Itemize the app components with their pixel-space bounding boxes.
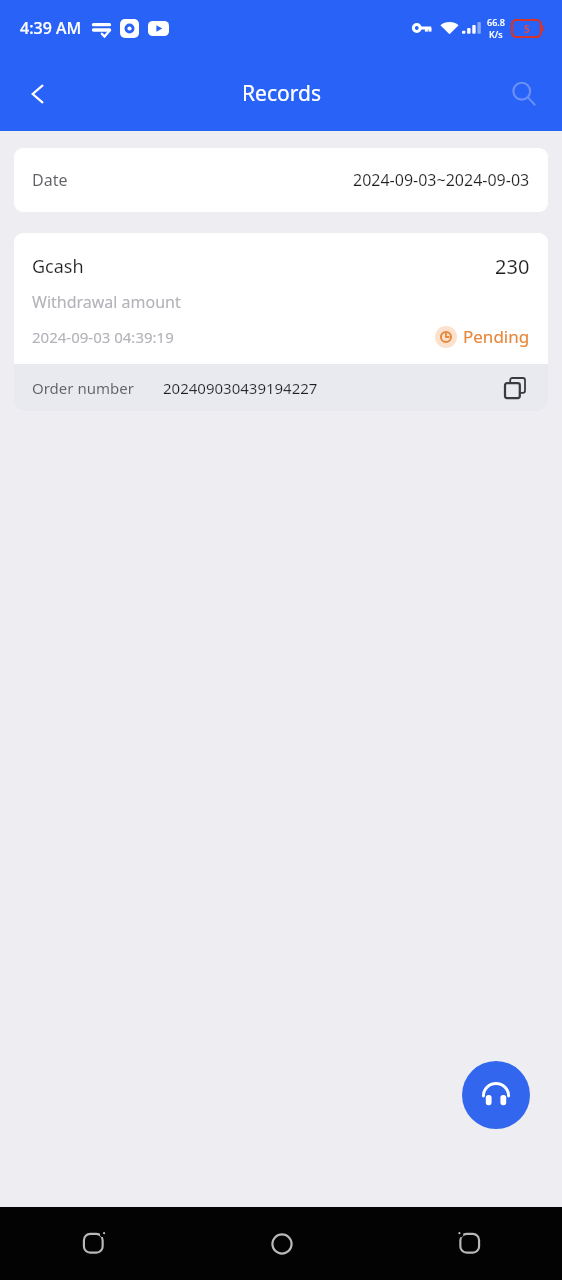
button[interactable]: Customer support: [462, 1061, 530, 1129]
staticText: Records: [242, 79, 321, 108]
button[interactable]: Recents: [0, 1207, 188, 1280]
staticText: 66.8: [487, 16, 505, 28]
staticText: Pending: [463, 325, 530, 348]
button[interactable]: Back: [12, 68, 64, 120]
staticText: K/s: [489, 28, 503, 40]
button[interactable]: Home: [188, 1207, 375, 1280]
button[interactable]: Gcash: [32, 253, 530, 348]
button[interactable]: Copy order number: [500, 373, 530, 403]
staticText: Order number: [32, 378, 134, 398]
staticText: Withdrawal amount: [32, 291, 181, 313]
staticText: Gcash: [32, 254, 84, 279]
staticText: 2024-09-03~2024-09-03: [353, 169, 530, 191]
button[interactable]: Search: [498, 68, 550, 120]
staticText: 2024-09-03 04:39:19: [32, 327, 174, 347]
staticText: Date: [32, 169, 68, 191]
button[interactable]: Order number: [32, 364, 530, 411]
staticText: 5: [524, 22, 530, 36]
staticText: 4:39 AM: [20, 17, 82, 39]
button[interactable]: Back: [375, 1207, 562, 1280]
button[interactable]: Date: [14, 148, 548, 212]
staticText: 230: [495, 253, 530, 280]
staticText: 202409030439194227: [163, 378, 318, 398]
